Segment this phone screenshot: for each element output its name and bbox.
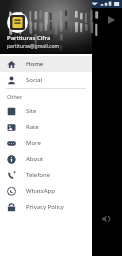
button[interactable]: Play [104, 13, 118, 27]
staticText: About [26, 155, 44, 163]
staticText: partituras@gmail.com [7, 43, 60, 50]
button[interactable]: Volume [100, 213, 112, 225]
button[interactable]: Home [0, 56, 92, 72]
staticText: Other [7, 93, 23, 100]
button[interactable]: Social [0, 72, 92, 88]
staticText: Home [26, 60, 44, 68]
staticText: Telefone [26, 171, 51, 179]
staticText: More [26, 139, 41, 147]
button[interactable]: Telefone [0, 167, 92, 183]
staticText: Privacy Policy [26, 203, 64, 211]
button[interactable]: Partituras Cifra [0, 0, 92, 54]
button[interactable]: Privacy Policy [0, 199, 92, 215]
button[interactable]: Rate [0, 119, 92, 135]
button[interactable]: More [0, 135, 92, 151]
staticText: Partituras Cifra [7, 34, 51, 42]
button[interactable]: Site [0, 103, 92, 119]
staticText: Site [26, 107, 37, 115]
staticText: Social [26, 76, 43, 84]
button[interactable]: About [0, 151, 92, 167]
staticText: WhatsApp [26, 187, 55, 195]
staticText: Rate [26, 123, 39, 131]
button[interactable]: WhatsApp [0, 183, 92, 199]
